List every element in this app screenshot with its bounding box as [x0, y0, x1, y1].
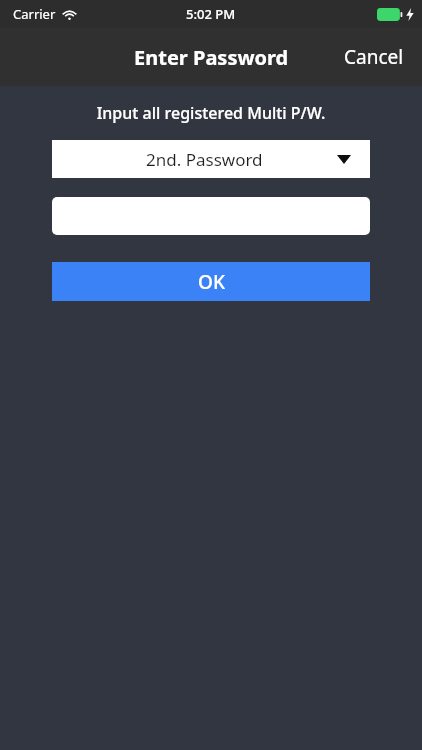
- staticText: Cancel: [344, 44, 404, 70]
- staticText: Carrier: [13, 5, 56, 23]
- staticText: OK: [198, 269, 225, 295]
- button[interactable]: 2nd. Password: [52, 140, 370, 178]
- staticText: 2nd. Password: [146, 148, 263, 171]
- staticText: Enter Password: [134, 44, 289, 71]
- staticText: Input all registered Multi P/W.: [0, 102, 422, 124]
- button[interactable]: Cancel: [326, 34, 422, 80]
- button[interactable]: Password input field: [52, 197, 370, 235]
- button[interactable]: OK: [52, 262, 370, 301]
- staticText: 5:02 PM: [186, 5, 236, 23]
